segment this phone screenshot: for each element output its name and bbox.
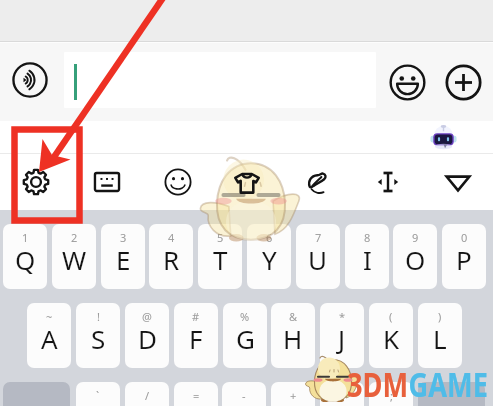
staticText: H [283, 321, 303, 356]
button[interactable]: ) [418, 303, 462, 368]
button[interactable]: 1 [3, 224, 47, 289]
button[interactable]: 5 [198, 224, 242, 289]
staticText: J [338, 321, 346, 356]
staticText: ) [438, 309, 442, 324]
button[interactable]: ` [76, 382, 120, 406]
button[interactable]: + [271, 382, 315, 406]
button[interactable]: AI assistant [428, 122, 459, 153]
staticText: ( [389, 309, 393, 324]
staticText: G [236, 321, 255, 356]
button[interactable]: : [320, 382, 364, 406]
staticText: ; [390, 388, 393, 403]
button[interactable]: Shift [3, 382, 70, 406]
staticText: 7 [315, 230, 322, 245]
button[interactable]: Switch keyboard [71, 154, 142, 210]
button[interactable]: @ [125, 303, 169, 368]
button[interactable]: Keyboard theme [213, 154, 283, 210]
staticText: @ [142, 309, 152, 324]
staticText: I [363, 242, 372, 277]
staticText: 1 [22, 230, 29, 245]
staticText: : [341, 388, 344, 403]
staticText: 8 [364, 230, 371, 245]
button[interactable]: ! [76, 303, 120, 368]
button[interactable] [64, 52, 376, 108]
button[interactable]: More options [443, 62, 484, 103]
button[interactable]: - [222, 382, 266, 406]
button[interactable]: & [271, 303, 315, 368]
staticText: O [405, 242, 426, 277]
staticText: S [91, 321, 106, 356]
staticText: ~ [46, 309, 53, 324]
staticText: * [339, 309, 346, 324]
button[interactable]: 6 [247, 224, 291, 289]
staticText: ! [97, 309, 100, 324]
staticText: = [193, 388, 200, 403]
button[interactable]: # [174, 303, 218, 368]
staticText: A [41, 321, 58, 356]
staticText: T [213, 242, 228, 277]
staticText: P [456, 242, 472, 277]
staticText: / [145, 388, 150, 403]
button[interactable]: Emoticons [142, 154, 213, 210]
staticText: N [332, 400, 352, 406]
staticText: - [242, 388, 246, 403]
button[interactable]: Handwriting [283, 154, 353, 210]
button[interactable]: % [223, 303, 267, 368]
staticText: + [290, 388, 297, 403]
button[interactable]: = [174, 382, 218, 406]
button[interactable]: Move cursor [353, 154, 423, 210]
button[interactable]: ~ [27, 303, 71, 368]
staticText: # [192, 309, 200, 324]
button[interactable]: Hide keyboard [423, 154, 493, 210]
staticText: 4 [168, 230, 175, 245]
staticText: D [138, 321, 157, 356]
button[interactable]: 7 [296, 224, 340, 289]
button[interactable]: Keyboard settings [0, 154, 71, 210]
button[interactable]: 4 [149, 224, 193, 289]
button[interactable]: Emoji [387, 62, 428, 103]
button[interactable]: 8 [345, 224, 389, 289]
button[interactable]: 3 [101, 224, 145, 289]
button[interactable]: / [125, 382, 169, 406]
button[interactable]: ( [369, 303, 413, 368]
staticText: 3DM [347, 361, 409, 406]
staticText: F [189, 321, 203, 356]
staticText: W [62, 242, 87, 277]
button[interactable]: Voice input [8, 58, 52, 102]
staticText: L [433, 321, 447, 356]
staticText: 9 [412, 230, 419, 245]
staticText: ` [96, 388, 100, 403]
button[interactable]: * [320, 303, 364, 368]
staticText: R [163, 242, 180, 277]
button[interactable]: 9 [393, 224, 437, 289]
button[interactable]: 0 [442, 224, 486, 289]
staticText: 2 [71, 230, 78, 245]
button[interactable]: 2 [52, 224, 96, 289]
staticText: Y [262, 242, 277, 277]
staticText: 6 [266, 230, 273, 245]
staticText: U [308, 242, 328, 277]
staticText: M [379, 400, 403, 406]
staticText: Q [15, 242, 36, 277]
staticText: K [383, 321, 400, 356]
staticText: GAME [409, 361, 489, 406]
staticText: E [116, 242, 131, 277]
staticText: 5 [217, 230, 224, 245]
staticText: & [289, 309, 298, 324]
staticText: 0 [461, 230, 468, 245]
staticText: % [240, 309, 250, 324]
button[interactable]: Delete [418, 382, 485, 406]
staticText: 3 [120, 230, 127, 245]
button[interactable]: ; [369, 382, 413, 406]
